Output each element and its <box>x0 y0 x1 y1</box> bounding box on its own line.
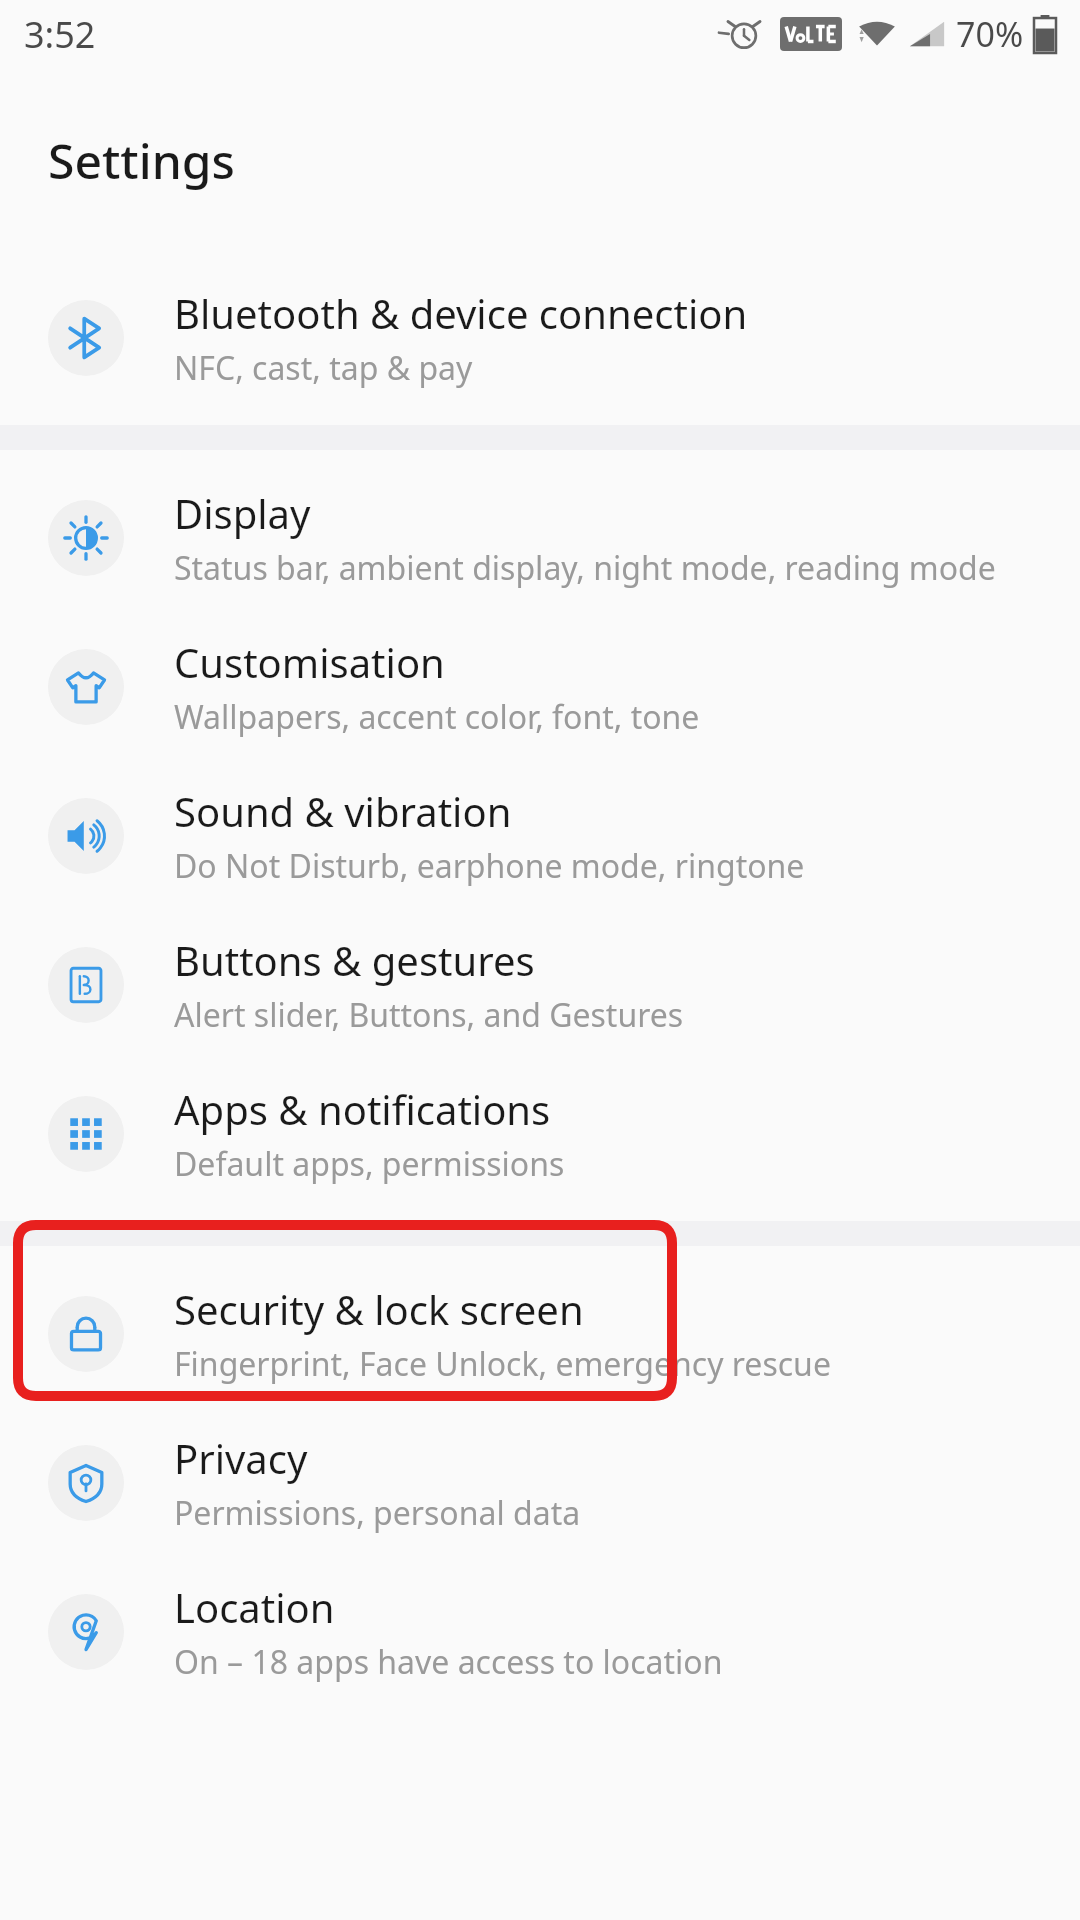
staticText: Apps & notifications <box>174 1082 551 1136</box>
button[interactable]: Customisation <box>0 612 1080 761</box>
other: Buttons and gestures <box>64 963 108 1007</box>
staticText: Do Not Disturb, earphone mode, ringtone <box>174 844 805 888</box>
staticText: Default apps, permissions <box>174 1142 565 1186</box>
staticText: Location <box>174 1580 335 1634</box>
staticText: Permissions, personal data <box>174 1491 581 1535</box>
button[interactable]: Security and lock screen <box>0 1259 1080 1408</box>
staticText: Status bar, ambient display, night mode,… <box>174 546 996 590</box>
staticText: Customisation <box>174 635 445 689</box>
staticText: On – 18 apps have access to location <box>174 1640 723 1684</box>
staticText: Alert slider, Buttons, and Gestures <box>174 993 684 1037</box>
staticText: 3:52 <box>24 10 96 59</box>
other: Privacy <box>64 1461 108 1505</box>
staticText: Sound & vibration <box>174 784 512 838</box>
button[interactable]: Display <box>0 463 1080 612</box>
staticText: Privacy <box>174 1431 308 1485</box>
staticText: Settings <box>48 128 235 193</box>
button[interactable]: Apps and notifications <box>0 1059 1080 1208</box>
staticText: Security & lock screen <box>174 1282 584 1336</box>
other: Location <box>64 1610 108 1654</box>
button[interactable]: Location <box>0 1557 1080 1706</box>
other: Sound and vibration <box>64 814 108 858</box>
button[interactable]: Privacy <box>0 1408 1080 1557</box>
staticText: Buttons & gestures <box>174 933 535 987</box>
other: Display <box>64 516 108 560</box>
staticText: 70% <box>956 11 1024 57</box>
staticText: Display <box>174 486 311 540</box>
button[interactable]: Bluetooth <box>0 263 1080 412</box>
staticText: Bluetooth & device connection <box>174 286 748 340</box>
other: Apps and notifications <box>64 1112 108 1156</box>
staticText: NFC, cast, tap & pay <box>174 346 473 390</box>
staticText: Fingerprint, Face Unlock, emergency resc… <box>174 1342 831 1386</box>
button[interactable]: Buttons and gestures <box>0 910 1080 1059</box>
staticText: Wallpapers, accent color, font, tone <box>174 695 700 739</box>
other: Security and lock screen <box>64 1312 108 1356</box>
other: Customisation <box>64 665 108 709</box>
other: Bluetooth <box>64 316 108 360</box>
button[interactable]: Sound and vibration <box>0 761 1080 910</box>
